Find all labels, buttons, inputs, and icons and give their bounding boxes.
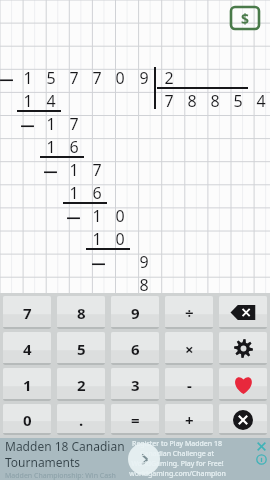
staticText: 8 — [210, 90, 220, 112]
staticText: × — [185, 339, 194, 359]
button[interactable]: Backspace — [219, 296, 267, 329]
button[interactable]: 9 — [111, 296, 159, 329]
button[interactable]: 7 — [3, 296, 51, 329]
button[interactable]: Madden 18 Canadian — [0, 438, 270, 480]
staticText: 1 — [69, 182, 79, 204]
button[interactable]: . — [57, 404, 105, 435]
staticText: 8 — [139, 274, 149, 296]
button[interactable]: 2 — [57, 368, 105, 401]
staticText: 1 — [139, 297, 149, 319]
staticText: worldgaming.com/Champion — [129, 469, 226, 479]
staticText: 1 — [46, 136, 56, 158]
staticText: 5 — [233, 90, 243, 112]
staticText: 4 — [46, 90, 56, 112]
staticText: 9 — [131, 303, 140, 323]
staticText: WorldGaming. Play for Free! — [131, 459, 224, 469]
staticText: 6 — [92, 182, 102, 204]
staticText: Canadian Challenge at — [140, 449, 214, 459]
staticText: 0 — [115, 228, 125, 250]
button[interactable]: Clear — [219, 404, 267, 435]
button[interactable]: 8 — [57, 296, 105, 329]
button[interactable]: - — [165, 368, 213, 401]
staticText: 9 — [139, 251, 149, 273]
button[interactable]: 0 — [3, 404, 51, 435]
staticText: 4 — [256, 90, 266, 112]
staticText: 7 — [92, 159, 102, 181]
staticText: . — [79, 410, 84, 430]
button[interactable]: Earn money — [230, 6, 260, 30]
staticText: 8 — [77, 303, 86, 323]
staticText: Register to Play Madden 18 — [132, 439, 222, 449]
staticText: 7 — [164, 90, 174, 112]
staticText: 3 — [131, 375, 140, 395]
button[interactable]: 5 — [57, 332, 105, 365]
staticText: 1 — [46, 113, 56, 135]
staticText: 2 — [77, 375, 86, 395]
staticText: - — [187, 375, 192, 395]
staticText: + — [185, 410, 194, 430]
button[interactable]: = — [111, 404, 159, 435]
staticText: 5 — [46, 67, 56, 89]
staticText: Madden 18 Canadian — [5, 438, 125, 454]
staticText: Tournaments — [5, 454, 81, 470]
staticText: Madden Championship: Win Cash — [5, 471, 116, 480]
staticText: 5 — [77, 339, 86, 359]
staticText: 7 — [69, 113, 79, 135]
button[interactable]: Ad info — [256, 454, 267, 465]
staticText: 4 — [23, 339, 32, 359]
button[interactable]: 1 — [3, 368, 51, 401]
staticText: 9 — [139, 67, 149, 89]
button[interactable]: Favorite — [219, 368, 267, 401]
staticText: 1 — [23, 375, 32, 395]
button[interactable]: 6 — [111, 332, 159, 365]
staticText: 1 — [23, 67, 33, 89]
staticText: 8 — [187, 90, 197, 112]
button[interactable]: Close ad — [256, 441, 267, 452]
button[interactable]: × — [165, 332, 213, 365]
staticText: 0 — [115, 205, 125, 227]
staticText: 7 — [69, 67, 79, 89]
staticText: 1 — [92, 228, 102, 250]
button[interactable]: + — [165, 404, 213, 435]
staticText: 0 — [115, 67, 125, 89]
staticText: 7 — [92, 67, 102, 89]
staticText: = — [131, 410, 140, 430]
staticText: ÷ — [185, 303, 194, 323]
button[interactable]: Open ad — [128, 443, 160, 475]
button[interactable]: 3 — [111, 368, 159, 401]
staticText: 6 — [69, 136, 79, 158]
staticText: 0 — [23, 410, 32, 430]
staticText: 7 — [23, 303, 32, 323]
staticText: $ — [241, 9, 250, 28]
staticText: 1 — [92, 205, 102, 227]
button[interactable]: ÷ — [165, 296, 213, 329]
button[interactable]: Settings — [219, 332, 267, 365]
staticText: 1 — [69, 159, 79, 181]
staticText: 2 — [164, 67, 174, 89]
staticText: 1 — [23, 90, 33, 112]
button[interactable]: 4 — [3, 332, 51, 365]
staticText: 6 — [131, 339, 140, 359]
